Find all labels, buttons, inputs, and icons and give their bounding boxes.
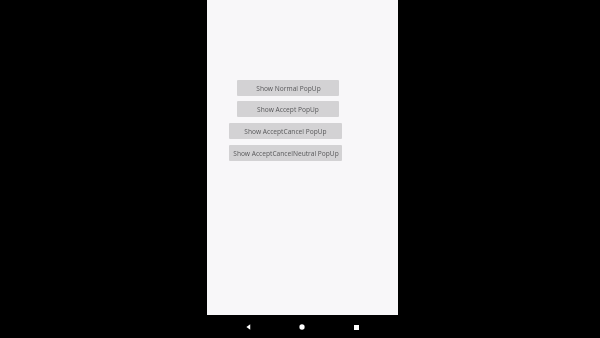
staticText: Show AcceptCancel PopUp (244, 127, 327, 136)
staticText: Show Accept PopUp (257, 105, 319, 114)
button[interactable]: Show AcceptCancelNeutral PopUp (229, 145, 342, 161)
button[interactable]: Show Normal PopUp (237, 80, 339, 96)
button[interactable]: Show Accept PopUp (237, 101, 339, 117)
staticText: Show AcceptCancelNeutral PopUp (233, 149, 339, 158)
button[interactable]: Recent apps (351, 322, 361, 332)
staticText: Show Normal PopUp (256, 84, 321, 93)
button[interactable]: Show AcceptCancel PopUp (229, 123, 342, 139)
button[interactable]: Back (243, 322, 253, 332)
button[interactable]: Home (297, 322, 307, 332)
